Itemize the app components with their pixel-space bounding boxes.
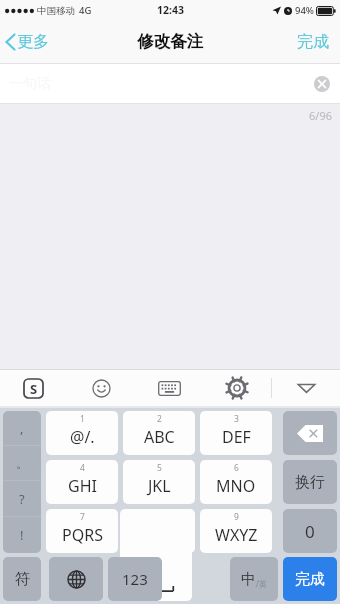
staticText: @/. [70,426,95,448]
staticText: 符 [15,570,30,589]
staticText: 12:43 [157,3,184,17]
button[interactable]: 换行 [283,460,337,504]
button[interactable]: 0 [283,509,337,553]
button[interactable]: , [3,411,41,445]
staticText: ABC [144,426,175,448]
staticText: 9 [234,511,239,523]
staticText: ! [20,526,24,544]
staticText: GHI [68,475,97,497]
button[interactable]: 4 [46,460,118,504]
staticText: 6/96 [309,108,332,123]
staticText: 完成 [295,570,325,589]
button[interactable]: 符 [3,557,41,601]
staticText: 中 [241,570,256,589]
other: Hide keyboard [297,383,316,394]
staticText: PQRS [62,524,103,546]
staticText: 修改备注 [137,31,203,52]
staticText: 7 [80,511,85,523]
staticText: /英 [256,578,267,589]
button[interactable]: ? [3,481,41,516]
other: Sogou input method [22,377,45,400]
button[interactable]: 5 [123,460,195,504]
button[interactable]: Switch input language [49,557,103,601]
staticText: 。 [16,455,29,471]
staticText: 5 [157,462,162,474]
staticText: MNO [216,475,256,497]
button[interactable]: 中 [230,557,278,601]
button[interactable]: 完成 [286,23,340,61]
button[interactable]: 3 [200,411,272,455]
staticText: JKL [148,475,171,497]
staticText: S [30,380,38,398]
button[interactable]: Backspace [283,411,337,455]
button[interactable]: 6 [200,460,272,504]
staticText: 123 [122,569,148,589]
staticText: 完成 [297,32,329,52]
button[interactable]: 7 [46,509,118,553]
button[interactable]: 更多 [0,24,61,60]
staticText: 6 [234,462,239,474]
staticText: WXYZ [215,524,258,546]
staticText: 94% [295,4,314,17]
button[interactable]: 9 [200,509,272,553]
staticText: 换行 [295,473,325,492]
button[interactable]: Hide keyboard [272,370,340,406]
staticText: 0 [305,520,315,543]
staticText: 2 [157,413,162,425]
button[interactable]: Space [120,509,192,601]
staticText: ? [19,490,25,508]
staticText: 1 [80,413,85,425]
button[interactable]: 完成 [283,557,337,601]
button[interactable]: ! [3,517,41,553]
staticText: 4G [79,4,92,17]
button[interactable]: 1 [46,411,118,455]
button[interactable]: 123 [108,557,162,601]
staticText: 中国移动 [37,5,75,17]
other: Keyboard layout [158,381,181,396]
staticText: 3 [234,413,239,425]
staticText: , [20,419,24,437]
other: Settings [227,378,247,398]
button[interactable]: Clear text [314,76,330,92]
button[interactable]: Emoji [67,370,135,406]
staticText: 4 [80,462,85,474]
staticText: DEF [222,426,251,448]
button[interactable]: 2 [123,411,195,455]
button[interactable]: Sogou input method [0,370,67,406]
other: Emoji [92,379,111,398]
button[interactable]: Settings [203,370,271,406]
button[interactable]: Keyboard layout [135,370,203,406]
staticText: 更多 [17,32,49,52]
